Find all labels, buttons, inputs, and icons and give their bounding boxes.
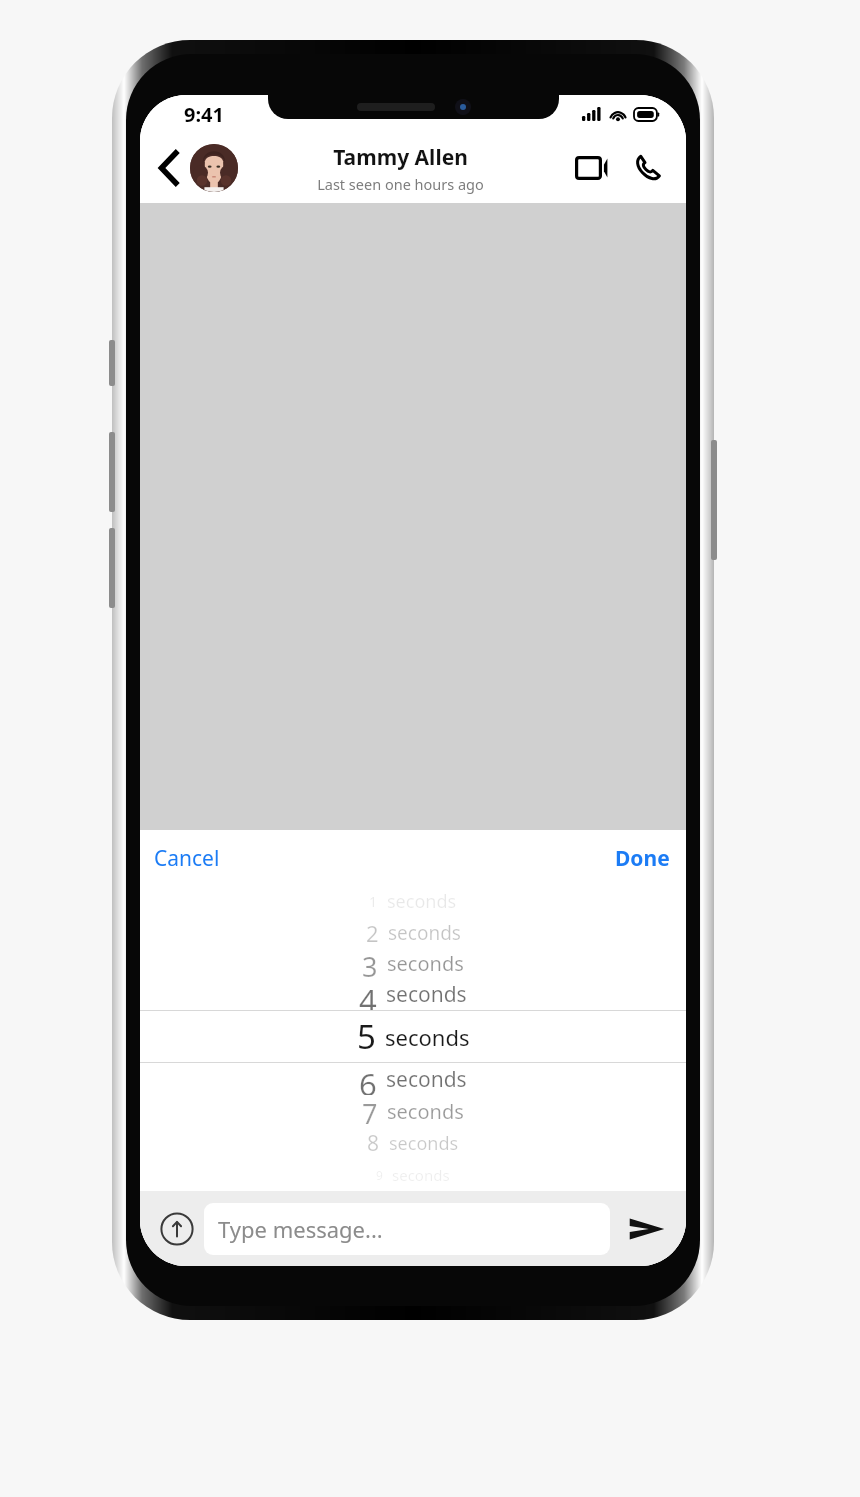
staticText: seconds — [387, 1098, 464, 1125]
staticText: Last seen one hours ago — [317, 174, 484, 194]
button[interactable]: 7 — [140, 1095, 686, 1127]
button[interactable]: 6 — [140, 1063, 686, 1095]
staticText: Leave no trace on our servers — [281, 982, 497, 1003]
button[interactable]: Attach — [140, 1208, 204, 1250]
staticText: Do not allow forwarding — [281, 1044, 458, 1065]
staticText: 9:41 — [184, 101, 224, 128]
button[interactable]: Done — [601, 836, 686, 881]
button[interactable]: Cancel — [140, 836, 234, 881]
button[interactable]: 2 — [140, 917, 686, 948]
staticText: seconds — [388, 920, 461, 946]
button[interactable]: Contact photo — [190, 144, 238, 192]
staticText: seconds — [387, 950, 464, 977]
button[interactable]: You Have Invited Landon Lee — [241, 831, 585, 1084]
staticText: Tammy Allen — [333, 143, 468, 172]
staticText: seconds — [385, 1022, 470, 1052]
staticText: 6 — [359, 1063, 377, 1095]
staticText: 1 — [369, 892, 378, 911]
button[interactable]: Call — [622, 146, 686, 190]
staticText: 7 — [362, 1095, 378, 1127]
button[interactable]: Send — [610, 1207, 686, 1251]
staticText: 5 — [357, 1014, 376, 1059]
button[interactable]: Type message... — [204, 1203, 610, 1255]
button[interactable]: Video call — [562, 146, 622, 190]
staticText: seconds — [386, 980, 467, 1009]
staticText: 3 — [362, 948, 378, 979]
button[interactable]: 4 — [140, 979, 686, 1010]
staticText: Type message... — [218, 1214, 383, 1244]
staticText: 9 — [376, 1167, 383, 1183]
button[interactable]: Back — [140, 148, 190, 188]
button[interactable]: Tammy Allen — [238, 143, 562, 194]
staticText: seconds — [392, 1165, 450, 1185]
staticText: Use end-to-end Encryption — [281, 951, 476, 972]
button[interactable]: 8 — [140, 1127, 686, 1159]
staticText: seconds — [387, 889, 457, 914]
staticText: 8 — [367, 1129, 380, 1158]
button[interactable]: 3 — [140, 948, 686, 979]
staticText: Cancel — [154, 844, 220, 873]
staticText: seconds — [386, 1065, 467, 1094]
staticText: 4 — [359, 979, 377, 1010]
staticText: Have Self-Distruct timer — [281, 1013, 455, 1034]
staticText: Done — [615, 844, 670, 873]
staticText: seconds — [389, 1131, 459, 1156]
staticText: 2 — [366, 918, 379, 948]
